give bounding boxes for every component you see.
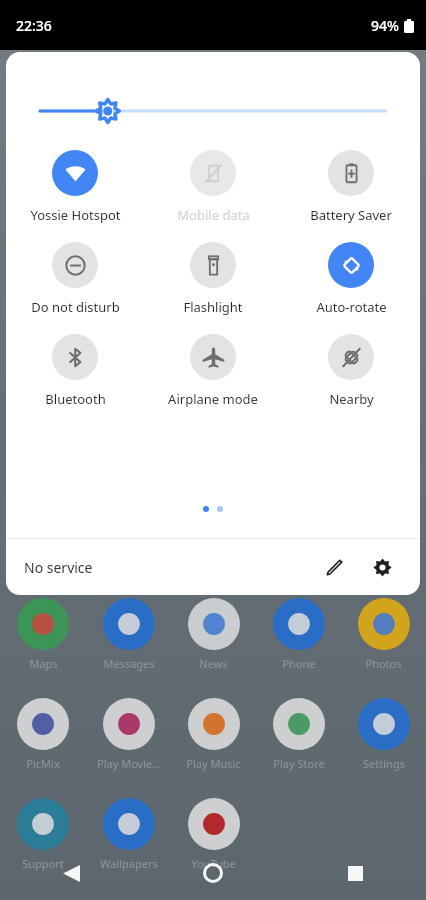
staticText: Phone [282, 656, 316, 671]
staticText: Nearby [329, 390, 374, 408]
button[interactable]: Airplane mode [144, 334, 282, 408]
staticText: Yossie Hotspot [30, 206, 121, 224]
button[interactable]: Recent apps [284, 846, 426, 900]
button[interactable]: Phone [256, 598, 341, 671]
staticText: News [199, 656, 228, 671]
staticText: No service [24, 558, 93, 577]
button[interactable]: Do not disturb [6, 242, 144, 316]
staticText: Messages [103, 656, 155, 671]
button[interactable]: Play Movie… [86, 698, 171, 771]
staticText: Auto-rotate [316, 298, 387, 316]
button[interactable]: Yossie Hotspot [6, 150, 144, 224]
button[interactable]: Flashlight [144, 242, 282, 316]
button[interactable]: Home [142, 846, 284, 900]
button[interactable]: Support [0, 798, 86, 871]
button[interactable]: News [171, 598, 256, 671]
staticText: YouTube [191, 856, 236, 871]
button[interactable]: Nearby [282, 334, 420, 408]
staticText: Flashlight [183, 298, 243, 316]
staticText: Play Store [273, 756, 325, 771]
button[interactable]: Battery Saver [282, 150, 420, 224]
staticText: Bluetooth [45, 390, 106, 408]
staticText: Maps [29, 656, 58, 671]
button[interactable]: Play Music [171, 698, 256, 771]
button[interactable]: Bluetooth [6, 334, 144, 408]
button[interactable]: PicMix [0, 698, 86, 771]
staticText: PicMix [26, 756, 60, 771]
button[interactable]: Play Store [256, 698, 341, 771]
staticText: Wallpapers [100, 856, 158, 871]
staticText: Battery Saver [310, 206, 392, 224]
button[interactable]: Brightness [40, 96, 386, 126]
staticText: Play Music [186, 756, 241, 771]
staticText: Photos [365, 656, 402, 671]
button[interactable]: Settings [341, 698, 426, 771]
button[interactable]: Maps [0, 598, 86, 671]
button[interactable]: Back [0, 846, 142, 900]
staticText: 94% [371, 16, 399, 35]
staticText: Do not disturb [31, 298, 120, 316]
button[interactable]: Auto-rotate [282, 242, 420, 316]
button[interactable]: Messages [86, 598, 171, 671]
button[interactable]: YouTube [171, 798, 256, 871]
staticText: Settings [363, 756, 405, 771]
staticText: Support [22, 856, 64, 871]
staticText: Mobile data [177, 206, 250, 224]
button[interactable]: Photos [341, 598, 426, 671]
staticText: Play Movie… [97, 756, 161, 771]
staticText: 22:36 [16, 16, 52, 35]
button[interactable]: Edit quick settings [314, 547, 354, 587]
staticText: Airplane mode [168, 390, 258, 408]
button[interactable]: Wallpapers [86, 798, 171, 871]
button[interactable]: Settings [362, 547, 402, 587]
button[interactable]: Mobile data [144, 150, 282, 224]
